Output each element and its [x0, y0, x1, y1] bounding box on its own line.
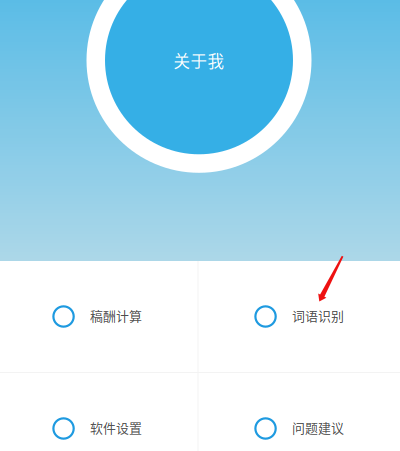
- button[interactable]: 软件设置: [0, 373, 200, 451]
- staticText: 关于我: [173, 48, 224, 72]
- staticText: 词语识别: [292, 306, 344, 325]
- button[interactable]: 稿酬计算: [0, 261, 200, 372]
- button[interactable]: 问题建议: [200, 373, 400, 451]
- button[interactable]: 词语识别: [200, 261, 400, 372]
- staticText: 问题建议: [292, 418, 344, 437]
- staticText: 软件设置: [90, 418, 142, 437]
- staticText: 稿酬计算: [90, 306, 142, 325]
